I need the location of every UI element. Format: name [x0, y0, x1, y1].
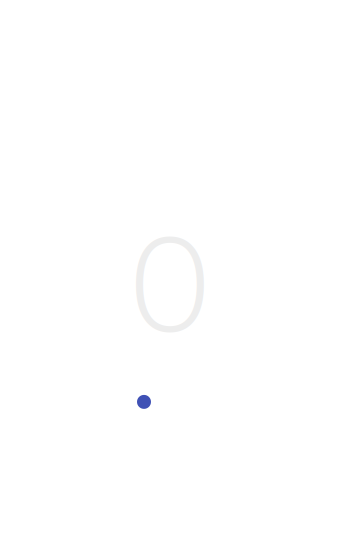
- staticText: 0: [127, 200, 213, 366]
- button[interactable]: Page 1, current page: [137, 395, 151, 409]
